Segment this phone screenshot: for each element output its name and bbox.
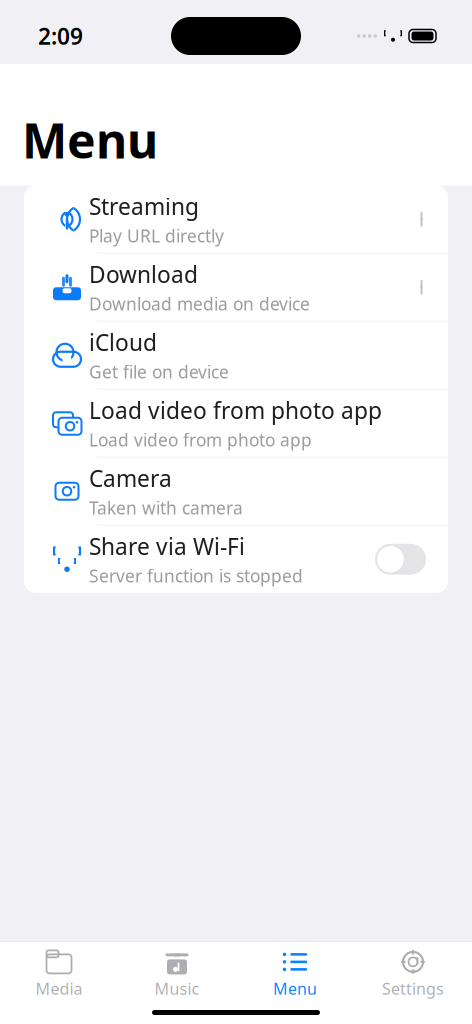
button[interactable]: Camera <box>24 458 448 526</box>
button[interactable]: Menu <box>236 941 354 1003</box>
button[interactable]: Music <box>118 941 236 1003</box>
staticText: Music <box>154 978 199 999</box>
staticText: Download <box>89 259 198 289</box>
button[interactable]: Share via Wi-Fi <box>24 526 448 593</box>
staticText: Download media on device <box>89 292 310 315</box>
staticText: Share via Wi-Fi <box>89 531 245 561</box>
button[interactable]: Settings <box>354 941 472 1003</box>
staticText: Load video from photo app <box>89 428 312 451</box>
button[interactable]: Load video from photo app <box>24 390 448 458</box>
staticText: Get file on device <box>89 360 229 383</box>
staticText: Taken with camera <box>89 496 243 519</box>
button[interactable]: iCloud <box>24 322 448 390</box>
staticText: Camera <box>89 463 172 493</box>
staticText: Streaming <box>89 191 199 221</box>
staticText: iCloud <box>89 327 157 357</box>
button[interactable]: Download <box>24 254 448 322</box>
button[interactable]: Streaming <box>24 186 448 254</box>
staticText: Menu <box>22 108 158 172</box>
staticText: Media <box>35 978 82 999</box>
staticText: Menu <box>273 978 317 999</box>
staticText: Play URL directly <box>89 224 224 247</box>
staticText: 2:09 <box>38 21 83 51</box>
button[interactable]: Media <box>0 941 118 1003</box>
staticText: Load video from photo app <box>89 395 382 425</box>
staticText: Server function is stopped <box>89 564 303 587</box>
staticText: Settings <box>382 978 444 999</box>
